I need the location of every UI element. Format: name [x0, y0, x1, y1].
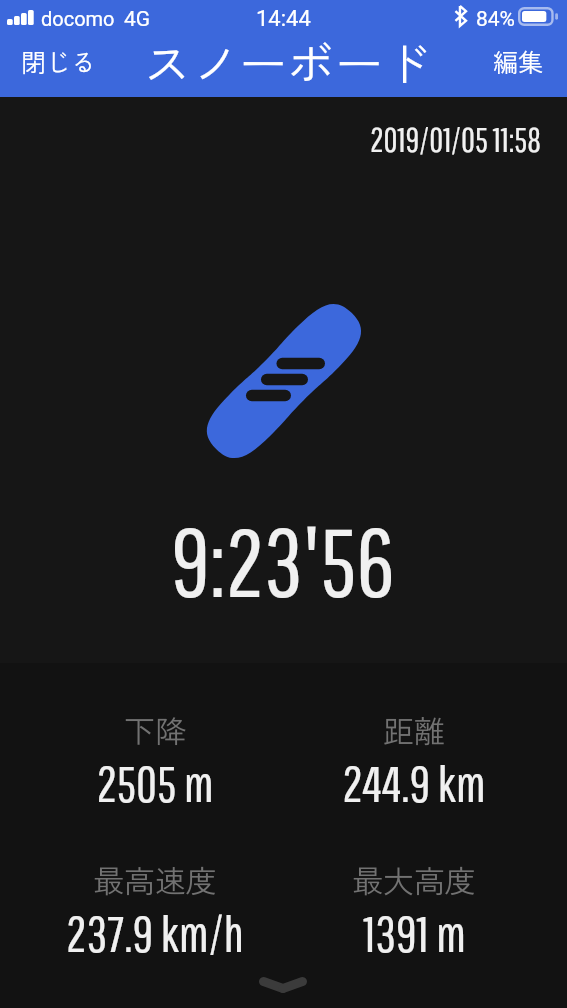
staticText: 1391 m [363, 903, 466, 962]
staticText: docomo [41, 7, 115, 30]
staticText: 244.9 km [342, 753, 486, 812]
button[interactable]: Collapse [245, 968, 321, 1002]
staticText: 2505 m [96, 753, 214, 812]
staticText: 最大高度 [352, 857, 476, 902]
staticText: 84% [476, 7, 515, 32]
staticText: 距離 [383, 707, 445, 752]
button[interactable]: 閉じる [16, 35, 102, 86]
button[interactable]: 距離 [274, 707, 554, 812]
staticText: 下降 [124, 707, 186, 752]
button[interactable]: 編集 [482, 35, 554, 86]
button[interactable]: 最高速度 [15, 857, 295, 962]
button[interactable]: 最大高度 [274, 857, 554, 962]
staticText: 4G [124, 7, 151, 32]
staticText: 2019/01/05 11:58 [370, 120, 542, 159]
staticText: 14:44 [256, 6, 311, 32]
staticText: 編集 [493, 43, 544, 79]
staticText: スノーボード [143, 26, 432, 85]
staticText: 閉じる [21, 43, 97, 79]
staticText: 最高速度 [93, 857, 217, 902]
button[interactable]: 下降 [15, 707, 295, 812]
staticText: 9:23'56 [171, 505, 396, 616]
staticText: 237.9 km/h [66, 903, 244, 962]
